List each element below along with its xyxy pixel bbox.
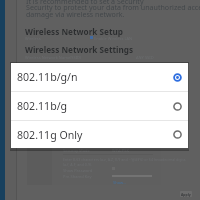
other: 802.11g Only (172, 129, 183, 140)
staticText: Security to protect your data from unaut… (26, 2, 200, 12)
other: 802.11b/g/n selected (172, 72, 183, 83)
staticText: Wireless Network Setup (25, 26, 123, 37)
button[interactable]: 802.11b/g/n (11, 63, 188, 91)
staticText: Security Mode (63, 148, 90, 153)
staticText: WPA-PSK (112, 148, 129, 153)
staticText: It is recommended to set a Security (26, 0, 144, 6)
staticText: Wireless Network Settings (25, 44, 134, 55)
staticText: Apply (181, 192, 191, 197)
staticText: 802.11g Only (17, 128, 83, 142)
staticText: 802.11b/g (17, 99, 68, 113)
other: 802.11b/g (172, 101, 183, 112)
button[interactable]: 802.11g Only (11, 121, 188, 148)
button[interactable]: 802.11b/g (11, 92, 188, 120)
staticText: damage via wireless network. (26, 9, 125, 19)
button[interactable]: Apply (180, 191, 192, 197)
staticText: Enable Wireless LAN (94, 36, 133, 41)
staticText: Show... (113, 180, 127, 185)
staticText: 802.11b/g/n (17, 70, 78, 84)
